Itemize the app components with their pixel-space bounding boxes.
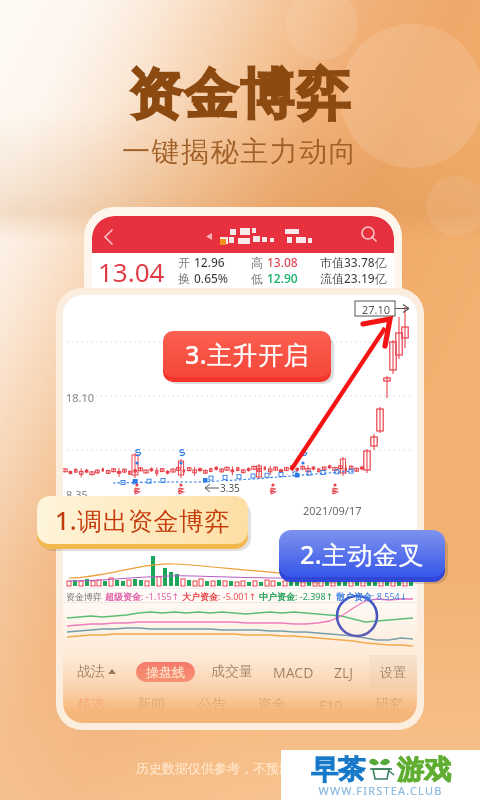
- staticText: 2.主动金叉: [300, 537, 425, 571]
- staticText: 超级资金: [105, 591, 141, 602]
- staticText: 12.96: [194, 254, 225, 270]
- staticText: 18.10: [66, 390, 95, 405]
- button[interactable]: 操盘线: [136, 662, 195, 682]
- staticText: MA3: 2.32万: [147, 518, 199, 530]
- staticText: : -2.398↑: [295, 590, 336, 602]
- button[interactable]: 研究: [375, 696, 403, 714]
- staticText: 大户资金: [182, 591, 218, 602]
- button[interactable]: MACD: [273, 663, 314, 682]
- staticText: MA2: 2.07万: [85, 518, 137, 530]
- staticText: 早茶: [311, 753, 365, 787]
- staticText: 3.35: [220, 481, 240, 495]
- staticText: 0.65%: [194, 270, 229, 286]
- button[interactable]: 设置: [369, 655, 417, 688]
- staticText: 游戏: [397, 753, 451, 787]
- staticText: 换: [178, 270, 194, 286]
- staticText: 资金博弈: [66, 590, 105, 602]
- button[interactable]: ZLJ: [334, 663, 354, 682]
- button[interactable]: 2.主动金叉: [279, 530, 445, 577]
- staticText: : 8.554↓: [372, 590, 408, 602]
- staticText: 3.主升开启: [185, 337, 310, 371]
- staticText: ↓: [199, 518, 209, 530]
- staticText: 一键揭秘主力动向: [0, 134, 480, 169]
- staticText: 战法: [77, 663, 105, 681]
- staticText: 12.90: [267, 270, 298, 286]
- staticText: 13.08: [267, 254, 298, 270]
- staticText: 27.10: [362, 302, 391, 317]
- button[interactable]: F10: [319, 696, 343, 715]
- staticText: : -5.001↑: [218, 590, 259, 602]
- button[interactable]: 新闻: [137, 696, 165, 714]
- staticText: 2021/09/17: [303, 503, 362, 518]
- staticText: ラ: [65, 518, 75, 529]
- button[interactable]: 精选: [77, 696, 105, 714]
- staticText: 低: [251, 270, 267, 286]
- staticText: 操盘线: [146, 664, 185, 680]
- staticText: 13.04: [98, 254, 165, 289]
- button[interactable]: 3.主升开启: [163, 331, 331, 377]
- staticText: ↓: [137, 518, 147, 530]
- staticText: 1.调出资金博弈: [55, 503, 231, 537]
- button[interactable]: 战法: [77, 663, 120, 681]
- button[interactable]: 资金: [258, 696, 286, 714]
- staticText: : -1.155↑: [141, 590, 182, 602]
- staticText: 流值23.19亿: [320, 270, 387, 286]
- staticText: 高: [251, 254, 267, 270]
- staticText: 设置: [380, 664, 406, 680]
- staticText: 资金博弈: [0, 61, 480, 129]
- button[interactable]: 公告: [198, 696, 226, 714]
- staticText: 市值33.78亿: [320, 254, 387, 270]
- staticText: 8.35: [66, 487, 88, 500]
- staticText: 中户资金: [259, 591, 295, 602]
- button[interactable]: 1.调出资金博弈: [37, 496, 248, 544]
- staticText: ↓: [75, 518, 85, 530]
- staticText: 历史数据仅供参考，不预测未来走势: [136, 760, 344, 776]
- staticText: 开: [178, 254, 194, 270]
- staticText: 散户资金: [336, 591, 372, 602]
- button[interactable]: 成交量: [211, 663, 253, 681]
- staticText: MA4:: [209, 518, 232, 530]
- staticText: WWW.FIRSTEA.CLUB: [318, 783, 443, 798]
